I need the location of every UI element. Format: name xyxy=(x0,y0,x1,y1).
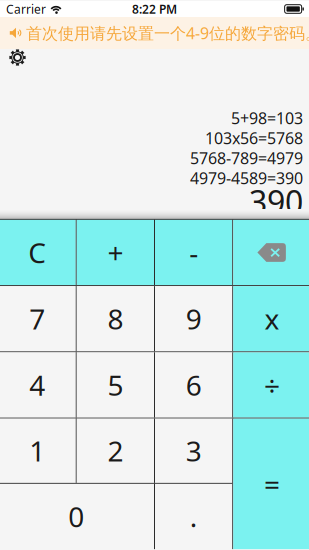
staticText: = xyxy=(264,465,280,502)
staticText: 390 xyxy=(249,180,303,223)
staticText: 0 xyxy=(68,498,84,535)
staticText: ÷ xyxy=(264,366,280,404)
staticText: 103x56=5768 xyxy=(205,127,303,149)
button[interactable]: C xyxy=(0,220,76,285)
staticText: 5768-789=4979 xyxy=(190,147,303,169)
button[interactable]: 1 xyxy=(0,419,76,483)
button[interactable]: 9 xyxy=(155,286,232,351)
staticText: 8:22 PM xyxy=(132,1,177,17)
staticText: x xyxy=(264,300,279,337)
button[interactable]: 6 xyxy=(155,352,232,418)
button[interactable]: = xyxy=(233,419,309,549)
staticText: 5 xyxy=(107,366,123,404)
button[interactable]: . xyxy=(155,484,232,549)
staticText: C xyxy=(28,234,46,271)
staticText: 1 xyxy=(29,432,45,469)
staticText: 4979-4589=390 xyxy=(190,167,303,189)
staticText: 首次使用请先设置一个4-9位的数字密码。密码设 xyxy=(26,22,309,44)
button[interactable]: 5 xyxy=(77,352,154,418)
button[interactable]: 0 xyxy=(0,484,154,549)
button[interactable]: + xyxy=(77,220,154,285)
staticText: 3 xyxy=(186,432,202,469)
staticText: . xyxy=(190,498,198,535)
button[interactable]: ÷ xyxy=(233,352,309,418)
staticText: 5+98=103 xyxy=(231,107,303,129)
staticText: 8 xyxy=(107,300,123,337)
button[interactable]: 7 xyxy=(0,286,76,351)
staticText: Carrier xyxy=(6,1,46,17)
button[interactable]: Delete xyxy=(233,220,309,285)
staticText: 4 xyxy=(29,366,45,404)
staticText: + xyxy=(107,234,123,271)
staticText: 2 xyxy=(107,432,123,469)
button[interactable]: x xyxy=(233,286,309,351)
staticText: 6 xyxy=(186,366,202,404)
button[interactable]: 2 xyxy=(77,419,154,483)
staticText: 7 xyxy=(29,300,45,337)
staticText: - xyxy=(189,234,198,271)
button[interactable]: 4 xyxy=(0,352,76,418)
button[interactable]: 3 xyxy=(155,419,232,483)
button[interactable]: - xyxy=(155,220,232,285)
button[interactable]: Settings xyxy=(9,49,43,66)
staticText: 9 xyxy=(186,300,202,337)
button[interactable]: 8 xyxy=(77,286,154,351)
